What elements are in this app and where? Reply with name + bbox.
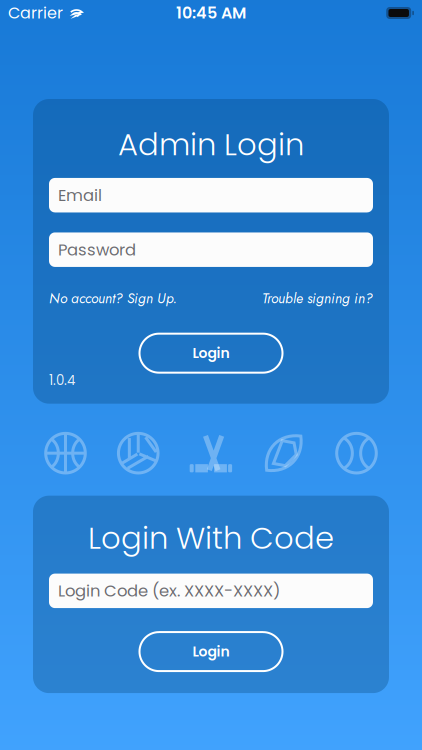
staticText: Login Code (ex. XXXX-XXXX) [58,579,280,602]
button[interactable]: Email [49,178,373,212]
staticText: Login With Code [88,517,334,560]
staticText: Password [58,238,136,261]
staticText: Trouble signing in? [262,288,373,308]
staticText: Login [192,343,229,363]
staticText: Admin Login [118,123,304,166]
button[interactable]: Login Code (ex. XXXX-XXXX) [49,574,373,608]
button[interactable]: No account? Sign Up. [49,288,177,308]
staticText: 1.0.4 [49,371,75,390]
staticText: Email [58,184,102,207]
staticText: Carrier [8,2,63,24]
button[interactable]: Password [49,232,373,267]
button[interactable]: Login [139,632,282,671]
button[interactable]: Login [139,334,282,373]
button[interactable]: Trouble signing in? [262,288,373,308]
staticText: 10:45 AM [176,2,246,24]
staticText: No account? Sign Up. [49,288,177,308]
staticText: Login [192,642,229,661]
